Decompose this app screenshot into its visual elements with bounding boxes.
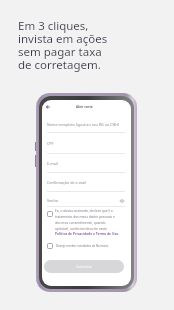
staticText: de corretagem. (18, 57, 101, 73)
staticText: sem pagar taxa (18, 44, 102, 60)
button[interactable]: Cadastrar (44, 260, 124, 273)
staticText: Em 3 cliques, (18, 18, 89, 34)
staticText: E-mail (47, 161, 58, 166)
button[interactable]: Mostrar senha (118, 197, 126, 205)
staticText: Cadastrar (76, 264, 92, 269)
staticText: Senha (47, 198, 58, 203)
staticText: Desejo receber novidades da Nuinvest. (56, 244, 109, 248)
staticText: Eu, o abaixo assinado, declaro que li e … (55, 209, 115, 231)
staticText: CPF (47, 141, 54, 146)
staticText: Confirmação de e-mail (47, 180, 87, 185)
button[interactable]: Política de Privacidade e Termo de Uso. (55, 231, 120, 235)
button[interactable]: Aceito os termos (47, 211, 53, 217)
staticText: Abrir conta (76, 105, 93, 109)
staticText: invista em ações (18, 31, 108, 47)
staticText: Nome completo (igual ao seu RG ou CNH) (47, 122, 120, 127)
button[interactable]: Desejo receber novidades (47, 243, 53, 249)
button[interactable]: Voltar (43, 102, 52, 111)
